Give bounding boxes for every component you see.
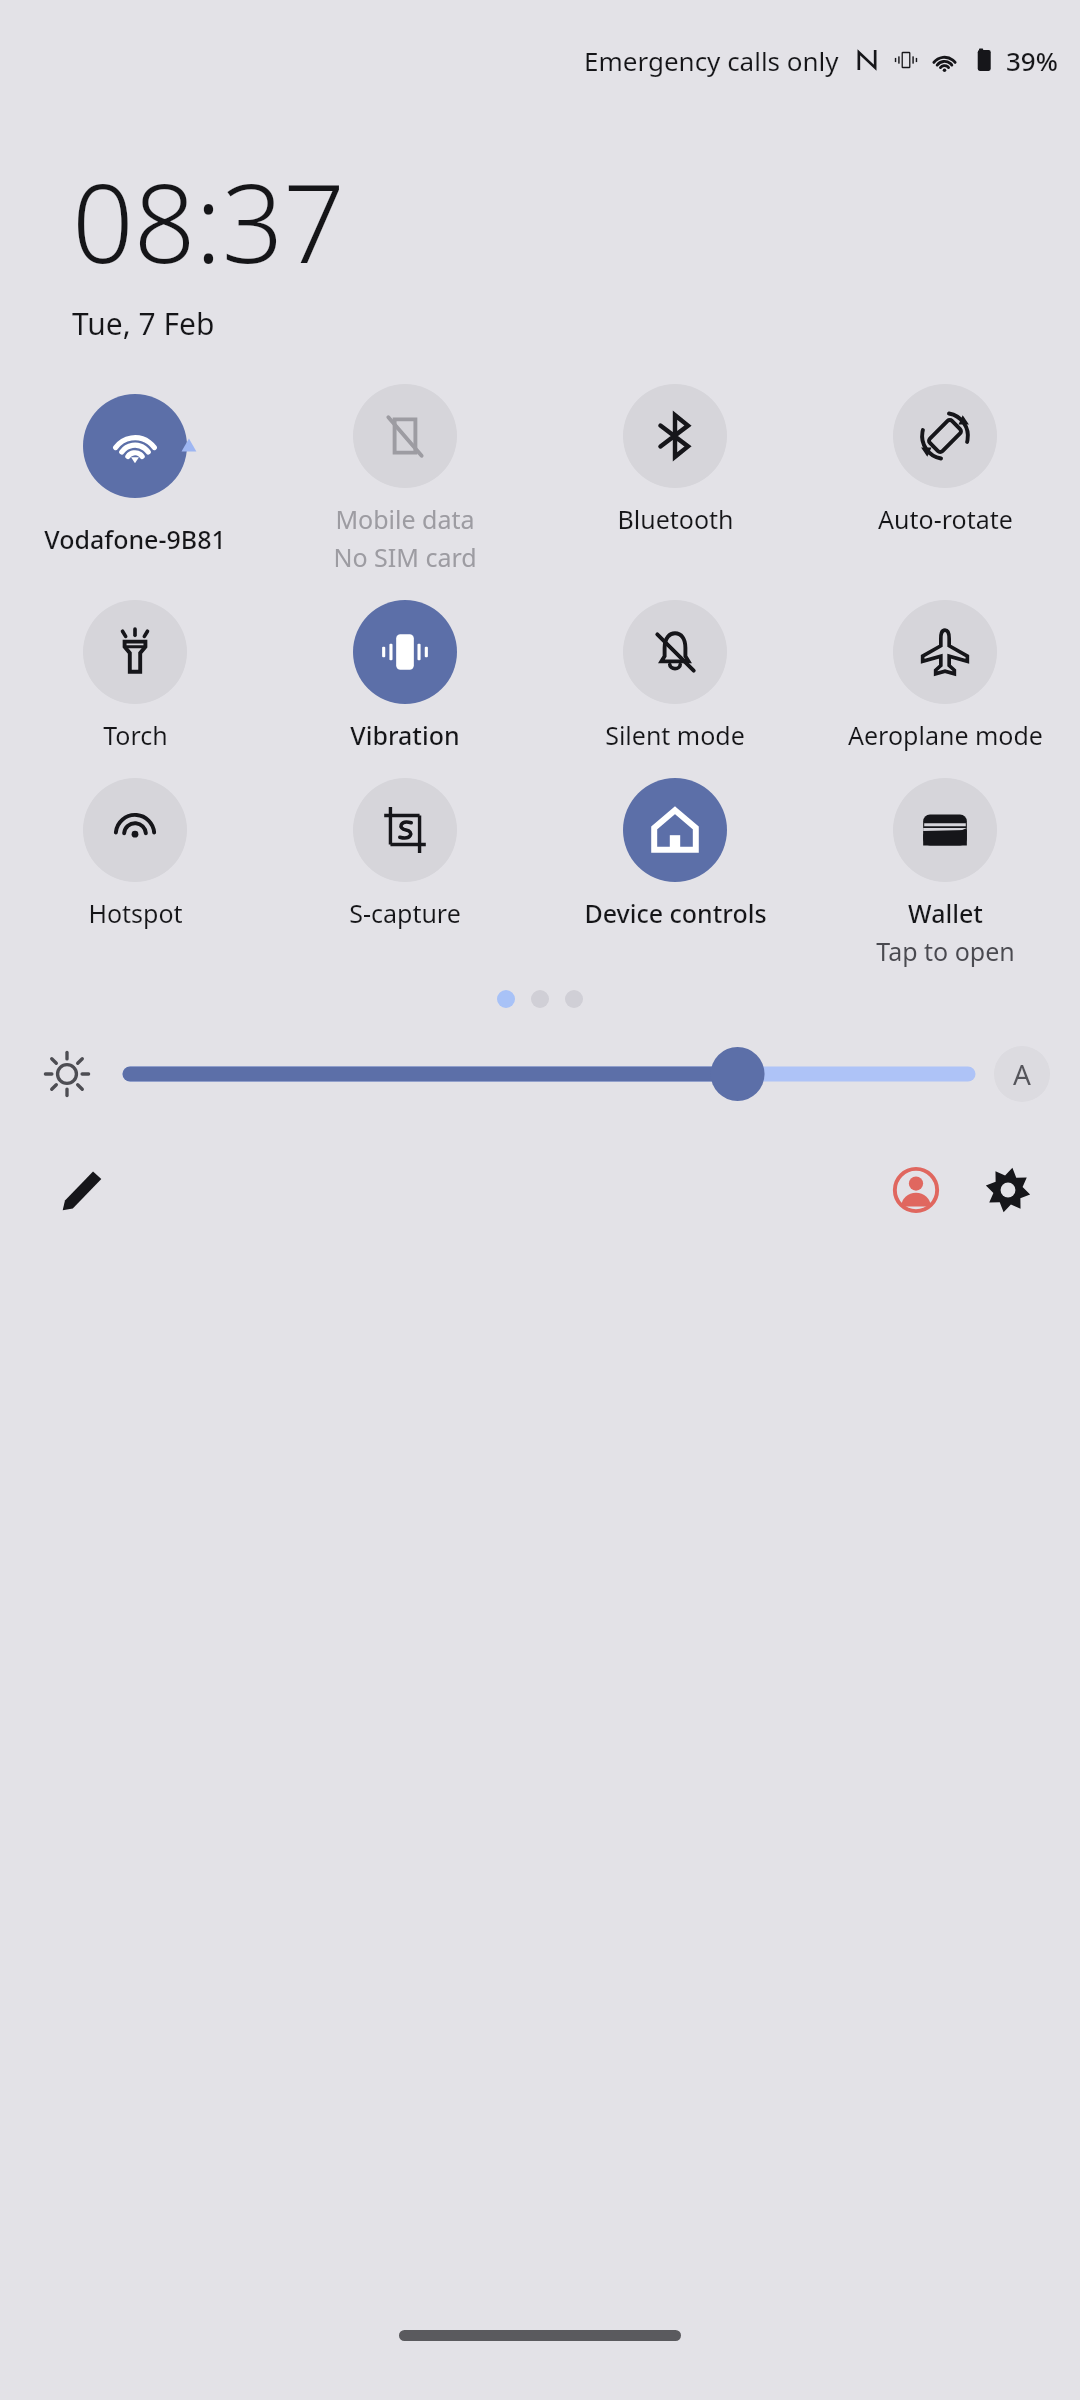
button[interactable]: Torch — [0, 600, 270, 752]
button[interactable]: Device controls — [540, 778, 810, 930]
staticText: Bluetooth — [617, 502, 734, 536]
staticText: S-capture — [349, 896, 461, 930]
staticText: Mobile data — [335, 502, 475, 536]
button[interactable]: Edit — [50, 1158, 114, 1222]
button[interactable]: Vodafone-9B81 — [0, 384, 270, 556]
staticText: Vibration — [350, 718, 460, 752]
button[interactable]: Mobile data — [270, 384, 540, 574]
staticText: A — [1013, 1055, 1031, 1093]
button[interactable]: Wallet — [810, 778, 1080, 968]
staticText: Torch — [103, 718, 168, 752]
staticText: 39% — [1006, 43, 1058, 78]
staticText: Tap to open — [876, 934, 1015, 968]
staticText: Aeroplane mode — [848, 718, 1043, 752]
staticText: Device controls — [584, 896, 767, 930]
staticText: Wallet — [908, 896, 983, 930]
button[interactable]: Settings — [976, 1158, 1040, 1222]
staticText: Vodafone-9B81 — [44, 522, 226, 556]
staticText: Hotspot — [88, 896, 183, 930]
button[interactable]: Vibration — [270, 600, 540, 752]
staticText: 08:37 — [72, 148, 346, 295]
staticText: Silent mode — [605, 718, 745, 752]
staticText: Auto-rotate — [878, 502, 1013, 536]
button[interactable]: Auto brightness — [994, 1046, 1050, 1102]
button[interactable]: User account — [884, 1158, 948, 1222]
staticText: No SIM card — [333, 540, 477, 574]
button[interactable]: Silent mode — [540, 600, 810, 752]
button[interactable]: Auto-rotate — [810, 384, 1080, 536]
button[interactable]: Hotspot — [0, 778, 270, 930]
button[interactable]: Bluetooth — [540, 384, 810, 536]
button[interactable]: Aeroplane mode — [810, 600, 1080, 752]
staticText: Tue, 7 Feb — [72, 303, 215, 344]
button[interactable]: S-capture — [270, 778, 540, 930]
staticText: Emergency calls only — [584, 43, 839, 78]
button[interactable] — [130, 1044, 968, 1104]
